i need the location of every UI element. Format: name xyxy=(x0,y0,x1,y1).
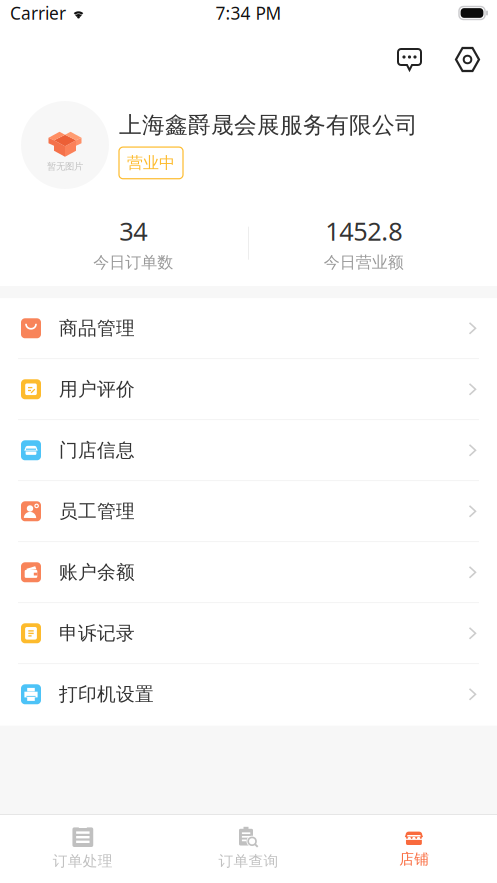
staticText: 1452.8 xyxy=(325,214,402,248)
button[interactable]: 订单处理 xyxy=(0,826,166,870)
button[interactable]: 订单查询 xyxy=(166,826,331,870)
staticText: 申诉记录 xyxy=(59,622,135,645)
staticText: 店铺 xyxy=(399,850,429,868)
staticText: Carrier xyxy=(10,1,66,24)
staticText: 今日营业额 xyxy=(324,253,404,272)
button[interactable]: 设置 xyxy=(447,39,488,80)
button[interactable]: 申诉记录 xyxy=(0,603,497,664)
staticText: 打印机设置 xyxy=(59,683,154,706)
button[interactable]: 账户余额 xyxy=(0,542,497,603)
staticText: 营业中 xyxy=(127,153,175,173)
button[interactable]: 员工管理 xyxy=(0,481,497,542)
button[interactable]: 用户评价 xyxy=(0,359,497,420)
staticText: 账户余额 xyxy=(59,561,135,584)
staticText: 上海鑫爵晟会展服务有限公司 xyxy=(119,111,418,139)
staticText: 商品管理 xyxy=(59,317,135,340)
staticText: 门店信息 xyxy=(59,439,135,462)
staticText: 7:34 PM xyxy=(215,1,281,24)
button[interactable]: 店铺 xyxy=(331,828,497,868)
staticText: 订单查询 xyxy=(218,852,278,870)
button[interactable]: 消息 xyxy=(389,39,430,80)
staticText: 用户评价 xyxy=(59,378,135,401)
button[interactable]: 门店信息 xyxy=(0,420,497,481)
staticText: 今日订单数 xyxy=(93,253,173,272)
staticText: 订单处理 xyxy=(53,852,113,870)
button[interactable]: 商品管理 xyxy=(0,298,497,359)
staticText: 员工管理 xyxy=(59,500,135,523)
button[interactable]: 打印机设置 xyxy=(0,664,497,725)
staticText: 暂无图片 xyxy=(47,161,83,172)
staticText: 34 xyxy=(119,214,147,248)
